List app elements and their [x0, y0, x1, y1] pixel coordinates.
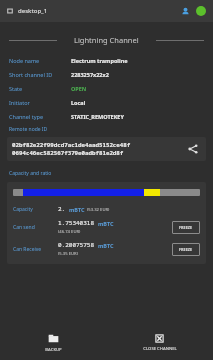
staticText: mBTC	[69, 206, 87, 213]
button[interactable]: Connected	[196, 6, 206, 16]
staticText: Short channel ID	[9, 71, 53, 78]
staticText: 2283257x22x2	[71, 71, 109, 78]
staticText: FREEZE	[179, 225, 193, 230]
staticText: FREEZE	[179, 247, 193, 252]
staticText: Can Receive	[13, 246, 42, 253]
button[interactable]: Account	[180, 7, 191, 16]
staticText: Remote node ID	[9, 126, 48, 133]
staticText: Can send	[13, 224, 35, 231]
staticText: (5.35 EUR)	[58, 251, 78, 257]
staticText: mBTC	[98, 242, 114, 249]
staticText: State	[9, 85, 23, 92]
staticText: Node name	[9, 57, 40, 64]
staticText: Initiator	[9, 99, 30, 106]
staticText: STATIC_REMOTEKEY	[71, 113, 124, 120]
staticText: 2.	[58, 205, 69, 213]
staticText: mBTC	[98, 220, 114, 227]
staticText: desktop_1	[18, 7, 48, 15]
staticText: Channel type	[9, 113, 43, 120]
staticText: BACKUP	[45, 347, 62, 353]
staticText: Capacity and ratio	[9, 170, 52, 177]
staticText: (53.32 EUR)	[87, 207, 110, 213]
staticText: Capacity	[13, 206, 33, 213]
staticText: OPEN	[71, 85, 87, 92]
button[interactable]: FREEZE	[172, 243, 200, 256]
staticText: CLOSE CHANNEL	[143, 346, 177, 352]
staticText: 0.20075758	[58, 241, 98, 249]
staticText: 1.75340318	[58, 219, 98, 227]
staticText: 0694c46ec582567f379e0adbf81e2d8f	[12, 149, 124, 157]
button[interactable]: FREEZE	[172, 221, 200, 234]
button[interactable]: Share	[185, 141, 201, 157]
staticText: (46.74 EUR)	[58, 229, 81, 235]
staticText: Local	[71, 99, 86, 106]
button[interactable]: BACKUP	[0, 326, 106, 360]
staticText: 02bf82e22f99dcd7ac1de4aad5152ce48f	[12, 141, 131, 149]
button[interactable]: CLOSE CHANNEL	[106, 326, 213, 360]
staticText: Lightning Channel	[74, 35, 139, 45]
staticText: Electrum trampoline	[71, 57, 128, 64]
